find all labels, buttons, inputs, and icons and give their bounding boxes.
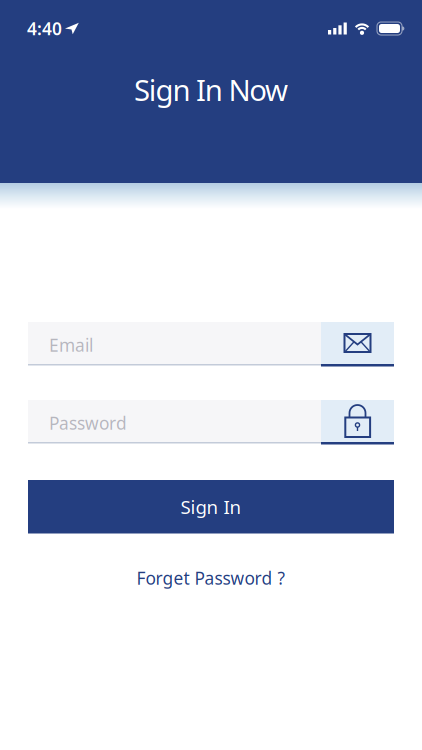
staticText: Email (49, 333, 93, 356)
staticText: 4:40 (27, 17, 62, 40)
button[interactable]: Forget Password ? (136, 566, 285, 589)
button[interactable]: Email (28, 322, 394, 366)
staticText: Forget Password ? (136, 566, 285, 589)
staticText: Sign In (180, 494, 241, 519)
button[interactable]: Sign In (28, 480, 394, 533)
staticText: Password (49, 411, 127, 434)
button[interactable]: Password (28, 400, 394, 444)
staticText: Sign In Now (134, 70, 288, 109)
